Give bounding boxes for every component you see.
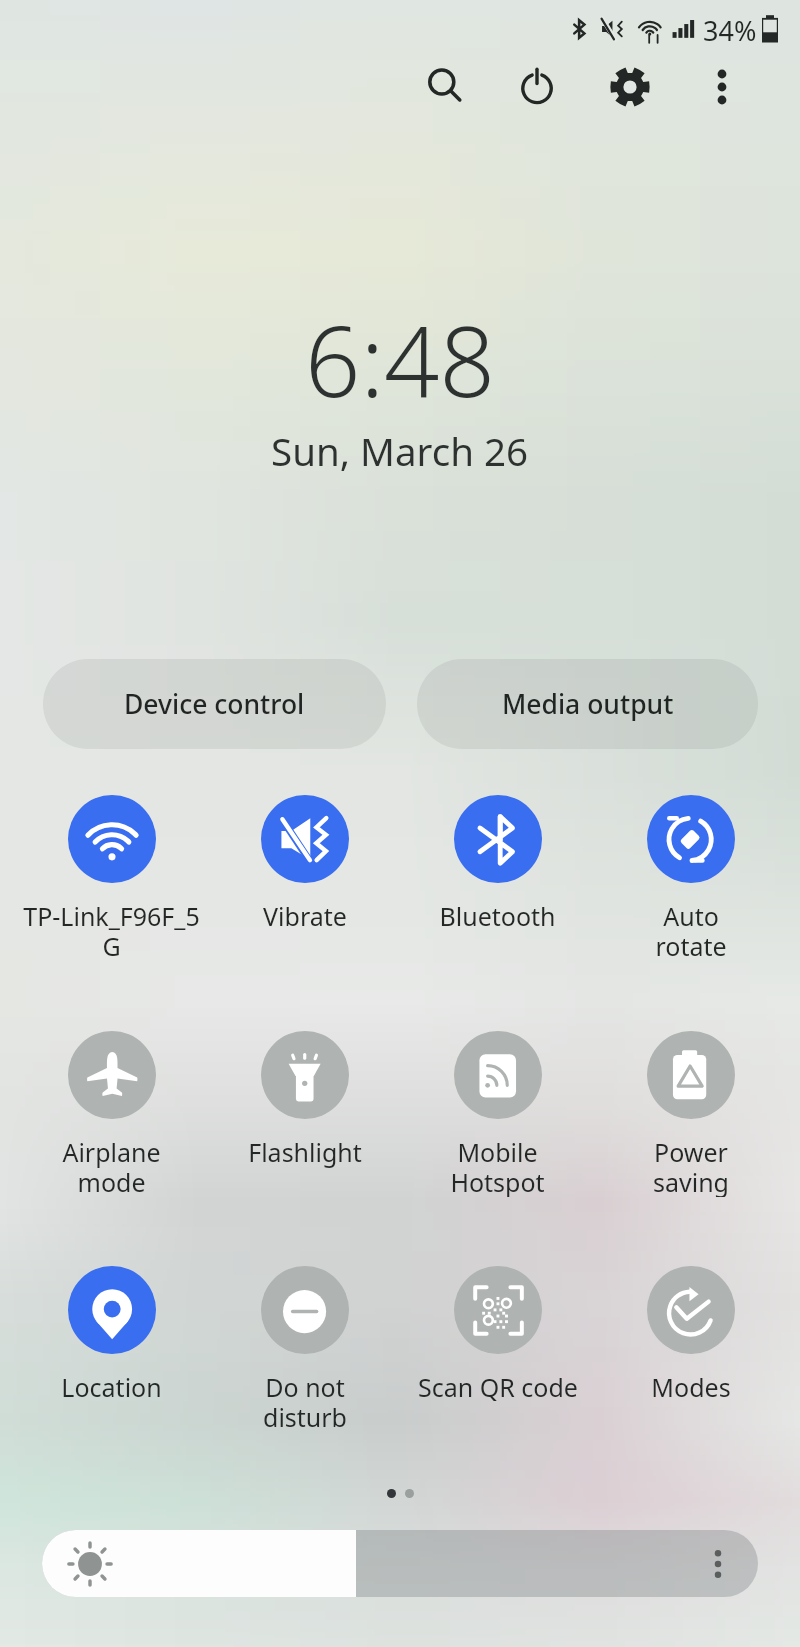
button[interactable]: More options (687, 52, 757, 122)
button[interactable]: Scan QR code (401, 1262, 594, 1432)
button[interactable]: Airplane mode (15, 1027, 208, 1197)
button[interactable]: Bluetooth (401, 791, 594, 961)
button[interactable]: Location (15, 1262, 208, 1432)
staticText: Location (61, 1370, 162, 1404)
staticText: 34% (703, 12, 757, 46)
staticText: Flashlight (248, 1135, 362, 1169)
staticText: Bluetooth (439, 899, 556, 933)
staticText: Auto rotate (655, 899, 727, 961)
other: Brightness options (703, 1549, 733, 1579)
staticText: Do not disturb (263, 1370, 347, 1432)
staticText: 6:48 (305, 293, 495, 425)
button[interactable]: Settings (595, 52, 665, 122)
staticText: Power saving (653, 1135, 729, 1197)
button[interactable]: Device control (43, 659, 386, 749)
staticText: Media output (502, 686, 674, 722)
button[interactable]: Power (502, 51, 572, 121)
button[interactable]: TP-Link_F96F_5 G (15, 791, 208, 961)
staticText: Modes (651, 1370, 731, 1404)
staticText: Scan QR code (418, 1370, 578, 1404)
button[interactable]: Modes (594, 1262, 787, 1432)
staticText: Sun, March 26 (271, 425, 529, 477)
button[interactable]: Flashlight (208, 1027, 401, 1197)
staticText: TP-Link_F96F_5 G (23, 899, 200, 961)
button[interactable]: Mobile Hotspot (401, 1027, 594, 1197)
button[interactable]: Search (410, 51, 480, 121)
button[interactable]: Do not disturb (208, 1262, 401, 1432)
staticText: Vibrate (263, 899, 347, 933)
staticText: Device control (124, 686, 305, 722)
button[interactable]: Media output (417, 659, 758, 749)
button[interactable]: Power saving (594, 1027, 787, 1197)
button[interactable]: Auto rotate (594, 791, 787, 961)
staticText: Mobile Hotspot (450, 1135, 545, 1197)
button[interactable]: Vibrate (208, 791, 401, 961)
button[interactable]: Brightness options (42, 1530, 758, 1597)
staticText: Airplane mode (62, 1135, 161, 1197)
